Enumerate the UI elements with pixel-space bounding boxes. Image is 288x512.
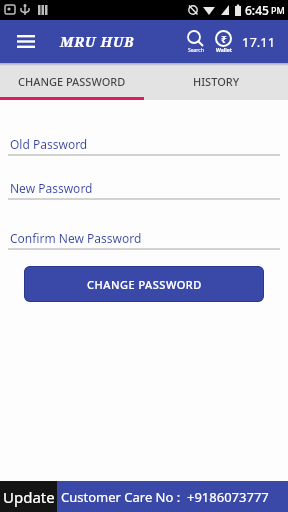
button[interactable]: Old Password [8, 136, 280, 156]
button[interactable]: Update [0, 481, 57, 512]
button[interactable]: Confirm New Password [8, 230, 280, 250]
staticText: CHANGE PASSWORD [18, 74, 126, 89]
staticText: Wallet [216, 47, 232, 54]
button[interactable] [0, 20, 52, 63]
button[interactable]: New Password [8, 180, 280, 200]
staticText: PM [271, 4, 285, 16]
button[interactable]: Search [184, 20, 207, 63]
button[interactable]: HISTORY [144, 63, 288, 100]
staticText: HISTORY [193, 74, 240, 89]
staticText: New Password [10, 180, 93, 196]
staticText: MRU HUB [60, 32, 135, 51]
staticText: Old Password [10, 136, 88, 152]
button[interactable]: Customer Care No : +9186073777 [61, 488, 269, 506]
staticText: 6:45 [245, 2, 269, 18]
button[interactable]: CHANGE PASSWORD [24, 266, 264, 302]
staticText: Search [188, 47, 204, 54]
staticText: CHANGE PASSWORD [87, 277, 202, 292]
staticText: Confirm New Password [10, 230, 142, 246]
staticText: Update [3, 487, 55, 507]
button[interactable]: ₹ [213, 20, 234, 63]
staticText: 17.11 [242, 33, 276, 51]
staticText: ₹ [221, 32, 227, 46]
button[interactable]: CHANGE PASSWORD [0, 63, 144, 100]
